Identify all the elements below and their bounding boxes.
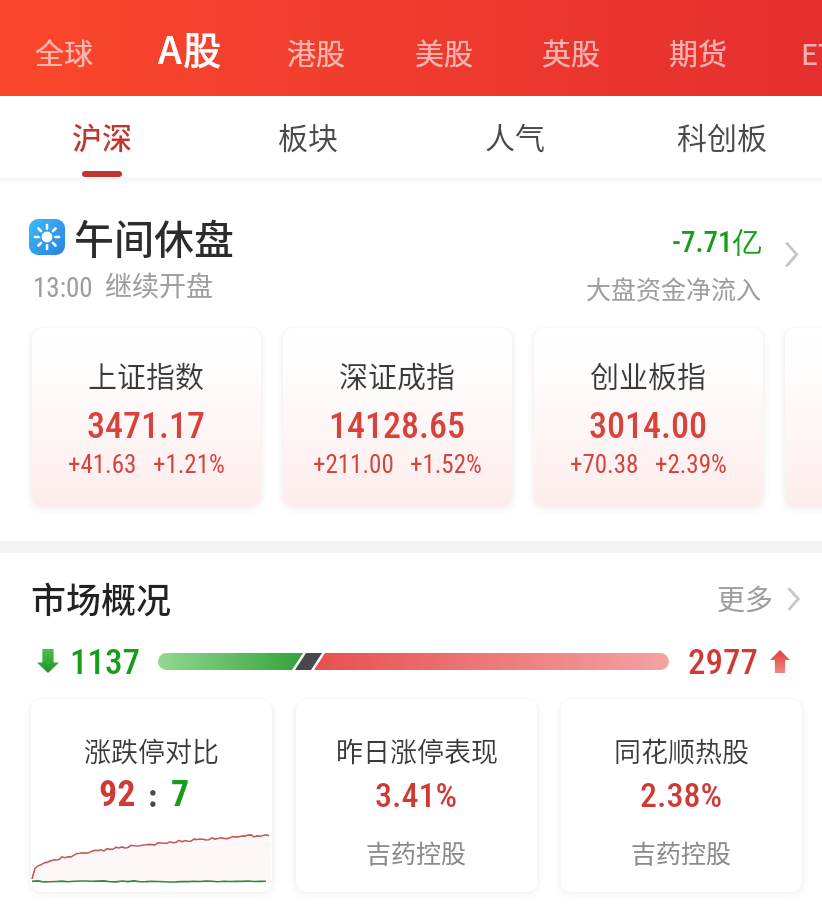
staticText: 3014.00 — [589, 405, 708, 447]
staticText: 92 — [99, 773, 136, 815]
staticText: 2977 — [688, 642, 758, 683]
staticText: 科创板 — [677, 114, 767, 157]
staticText: 13:00 — [33, 272, 93, 304]
staticText: +70.38 — [570, 450, 639, 479]
staticText: 同花顺热股 — [614, 731, 749, 770]
staticText: 港股 — [287, 31, 346, 73]
staticText: 3471.17 — [87, 405, 206, 447]
staticText: 人气 — [485, 114, 545, 157]
staticText: 深证成指 — [339, 354, 456, 396]
button[interactable]: Market status — [0, 196, 822, 312]
staticText: 吉药控股 — [366, 834, 467, 870]
other: Advancing — [770, 650, 790, 673]
staticText: +1.21% — [153, 450, 225, 479]
staticText: 继续开盘 — [105, 265, 213, 304]
button[interactable]: 深证成指 — [283, 328, 512, 507]
staticText: 上证指数 — [88, 354, 205, 396]
other: Open details — [782, 582, 804, 616]
staticText: 7 — [171, 773, 190, 815]
button[interactable]: A股 — [142, 0, 238, 95]
button[interactable]: 涨跌停对比 — [31, 699, 272, 892]
button[interactable]: 全球 — [26, 4, 102, 100]
staticText: : — [148, 772, 158, 815]
staticText: +41.63 — [68, 450, 137, 479]
staticText: 2.38% — [640, 775, 723, 815]
staticText: 午间休盘 — [74, 208, 234, 266]
staticText: +1.52% — [410, 450, 482, 479]
staticText: 创业板指 — [590, 354, 707, 396]
button[interactable]: 创业板指 — [534, 328, 763, 507]
button[interactable]: 同花顺热股 — [561, 699, 802, 892]
button[interactable]: 人气 — [440, 96, 590, 188]
button[interactable]: 板块 — [233, 96, 383, 188]
staticText: 14128.65 — [329, 405, 466, 447]
staticText: +211.00 — [313, 450, 394, 479]
staticText: 3.41% — [375, 775, 458, 815]
button[interactable]: 沪深 — [27, 96, 177, 188]
staticText: 板块 — [278, 114, 338, 157]
button[interactable]: 科创板 — [647, 96, 797, 188]
staticText: 大盘资金净流入 — [586, 270, 762, 306]
staticText: 吉药控股 — [631, 834, 732, 870]
staticText: 期货 — [669, 31, 728, 73]
button[interactable]: 美股 — [406, 4, 482, 100]
staticText: 市场概况 — [31, 572, 172, 623]
other: Open details — [779, 236, 803, 273]
staticText: 美股 — [415, 31, 474, 73]
staticText: 1137 — [70, 642, 140, 683]
staticText: 更多 — [717, 578, 774, 619]
staticText: 沪深 — [72, 114, 132, 157]
button[interactable]: ETF — [788, 4, 822, 100]
button[interactable]: 港股 — [278, 4, 354, 100]
other: Market status — [29, 219, 65, 255]
button[interactable] — [785, 328, 822, 507]
button[interactable]: 英股 — [533, 4, 609, 100]
button[interactable]: 上证指数 — [32, 328, 261, 507]
button[interactable]: 昨日涨停表现 — [296, 699, 537, 892]
staticText: +2.39% — [655, 450, 727, 479]
staticText: 昨日涨停表现 — [336, 731, 498, 770]
staticText: A股 — [158, 20, 223, 75]
staticText: -7.71亿 — [672, 224, 762, 261]
other: Declining — [37, 649, 59, 673]
button[interactable]: 期货 — [660, 4, 736, 100]
staticText: ETF — [801, 31, 822, 73]
staticText: 涨跌停对比 — [84, 731, 219, 770]
staticText: 全球 — [35, 31, 94, 73]
staticText: 英股 — [542, 31, 601, 73]
button[interactable]: 更多 — [717, 578, 804, 619]
